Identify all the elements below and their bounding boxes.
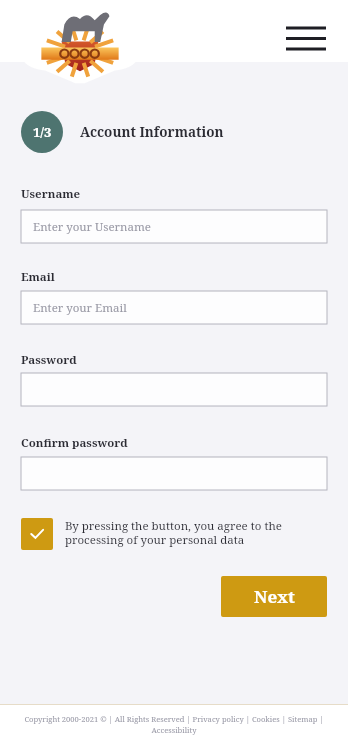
staticText: Next (254, 585, 295, 608)
staticText: Email (21, 269, 55, 285)
button[interactable] (21, 373, 327, 406)
button[interactable]: Enter your Email (21, 291, 327, 324)
button[interactable]: Enter your Username (21, 210, 327, 243)
staticText: Enter your Username (33, 219, 151, 235)
staticText: Username (21, 186, 81, 202)
button[interactable] (21, 457, 327, 490)
staticText: Password (21, 352, 77, 368)
staticText: Confirm password (21, 435, 128, 451)
staticText: Copyright 2000-2021 © | All Rights Reser… (14, 714, 334, 735)
staticText: 1/3 (33, 123, 52, 141)
staticText: Enter your Email (33, 300, 127, 316)
staticText: Account Information (80, 123, 224, 141)
button[interactable]: Menu (280, 12, 332, 64)
button[interactable]: 1/3 (21, 111, 224, 153)
button[interactable]: Next (221, 576, 327, 617)
staticText: By pressing the button, you agree to the… (65, 518, 297, 548)
button[interactable]: By pressing the button, you agree to the… (21, 518, 327, 550)
